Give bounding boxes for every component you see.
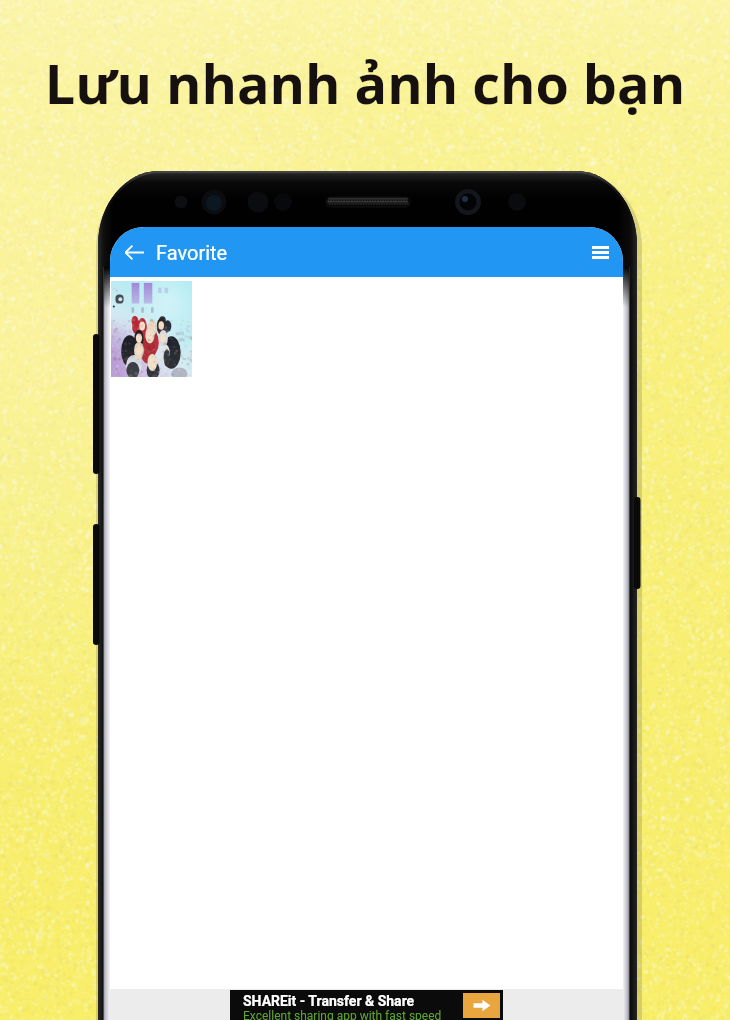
- staticText: Lưu nhanh ảnh cho bạn: [0, 46, 730, 120]
- button[interactable]: Photo: [111, 281, 192, 377]
- button[interactable]: Install: [463, 993, 500, 1018]
- button[interactable]: SHAREit - Transfer & Share: [230, 990, 503, 1020]
- staticText: SHAREit - Transfer & Share: [243, 993, 415, 1009]
- button[interactable]: Back: [115, 233, 153, 271]
- button[interactable]: Favorite: [156, 241, 228, 264]
- staticText: Excellent sharing app with fast speed: [243, 1009, 442, 1020]
- button[interactable]: Menu: [580, 232, 620, 272]
